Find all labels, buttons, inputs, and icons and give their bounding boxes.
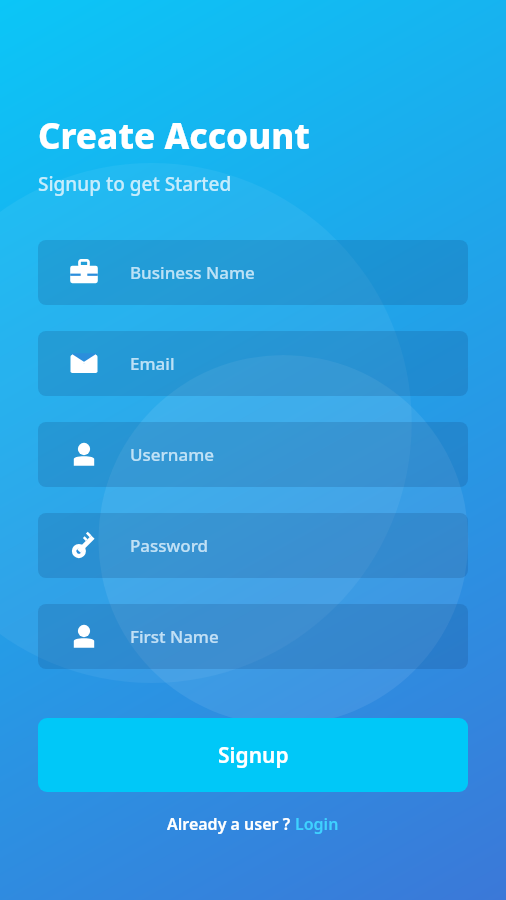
button[interactable]: Already a user ? <box>0 813 506 835</box>
button[interactable]: Signup <box>38 718 468 792</box>
staticText: Password <box>130 534 209 557</box>
staticText: Login <box>295 813 339 835</box>
button[interactable]: Username <box>38 422 468 487</box>
staticText: Business Name <box>130 261 255 284</box>
staticText: Email <box>130 352 175 375</box>
staticText: Already a user ? <box>167 813 295 835</box>
staticText: Create Account <box>38 112 310 160</box>
button[interactable]: Email <box>38 331 468 396</box>
button[interactable]: First Name <box>38 604 468 669</box>
staticText: Signup <box>218 741 289 770</box>
staticText: Signup to get Started <box>38 171 232 197</box>
button[interactable]: Password <box>38 513 468 578</box>
staticText: Username <box>130 443 214 466</box>
button[interactable]: Business Name <box>38 240 468 305</box>
staticText: First Name <box>130 625 219 648</box>
